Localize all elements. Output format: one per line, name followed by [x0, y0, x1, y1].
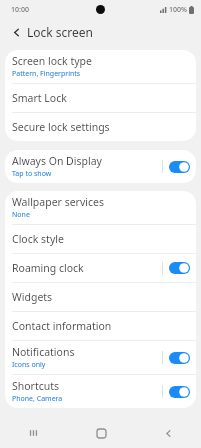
staticText: Notifications [12, 345, 75, 359]
staticText: Widgets [12, 290, 53, 304]
staticText: Smart Lock [12, 91, 67, 105]
button[interactable]: Smart Lock [5, 84, 196, 112]
staticText: Always On Display [12, 154, 102, 168]
staticText: Secure lock settings [12, 120, 110, 134]
staticText: Shortcuts [12, 379, 60, 393]
staticText: Lock screen [27, 24, 94, 40]
button[interactable]: Roaming clock [5, 254, 196, 282]
button[interactable]: Back [153, 418, 183, 448]
button[interactable]: Secure lock settings [5, 113, 196, 141]
button[interactable]: Wallpaper services [5, 191, 196, 224]
button[interactable]: Recent apps [19, 418, 49, 448]
staticText: Wallpaper services [12, 195, 104, 209]
staticText: Phone, Camera [12, 394, 63, 404]
staticText: 100% [169, 5, 187, 15]
button[interactable]: Always On Display switch [169, 161, 190, 173]
staticText: Screen lock type [12, 54, 92, 68]
button[interactable]: Always On Display [5, 150, 196, 183]
button[interactable]: Widgets [5, 283, 196, 311]
button[interactable]: Notifications [5, 341, 196, 374]
staticText: None [12, 210, 30, 220]
button[interactable]: Home [86, 418, 116, 448]
staticText: Pattern, Fingerprints [12, 69, 81, 79]
button[interactable]: Screen lock type [5, 50, 196, 83]
button[interactable]: Navigate up [7, 23, 25, 41]
staticText: Tap to show [12, 169, 52, 179]
button[interactable]: Clock style [5, 225, 196, 253]
button[interactable]: Notifications switch [169, 352, 190, 364]
staticText: Contact information [12, 319, 112, 333]
button[interactable]: Shortcuts [5, 375, 196, 408]
staticText: Icons only [12, 360, 46, 370]
button[interactable]: Roaming clock switch [169, 262, 190, 274]
staticText: Clock style [12, 232, 64, 246]
button[interactable]: Shortcuts switch [169, 386, 190, 398]
button[interactable]: Contact information [5, 312, 196, 340]
staticText: 10:00 [11, 5, 29, 15]
staticText: Roaming clock [12, 261, 84, 275]
